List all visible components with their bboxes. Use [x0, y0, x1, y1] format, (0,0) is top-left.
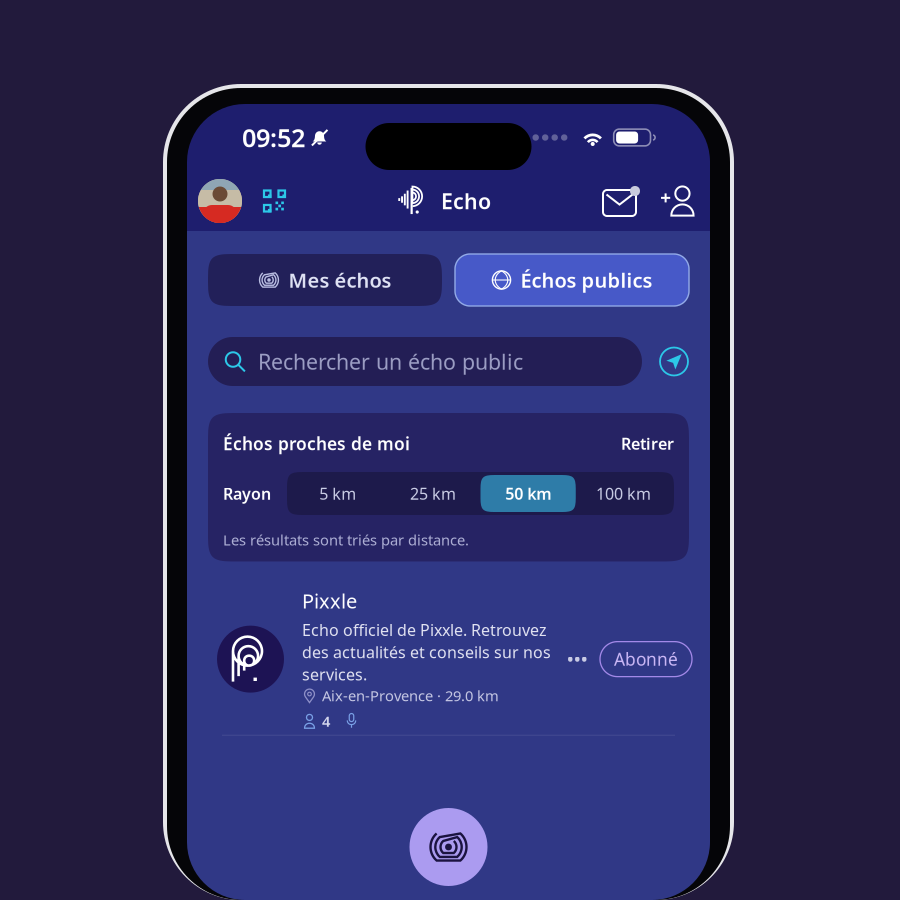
- staticText: Les résultats sont triés par distance.: [223, 530, 469, 549]
- staticText: Rechercher un écho public: [258, 347, 523, 376]
- button[interactable]: More options: [563, 644, 592, 675]
- button[interactable]: Pixxle: [187, 587, 710, 736]
- staticText: Aix-en-Provence · 29.0 km: [322, 686, 499, 705]
- staticText: 50 km: [505, 483, 551, 504]
- staticText: 100 km: [596, 483, 651, 504]
- staticText: Abonné: [614, 648, 678, 671]
- button[interactable]: Échos publics: [455, 254, 689, 306]
- button[interactable]: 5 km: [290, 475, 385, 512]
- staticText: Pixxle: [302, 587, 357, 614]
- staticText: 5 km: [319, 483, 356, 504]
- staticText: •••: [567, 648, 588, 671]
- button[interactable]: Use my location: [659, 346, 689, 376]
- button[interactable]: Abonné: [600, 642, 692, 677]
- staticText: Échos proches de moi: [223, 432, 410, 455]
- button[interactable]: Messages: [603, 186, 640, 216]
- button[interactable]: Add contact: [660, 185, 694, 216]
- staticText: Echo officiel de Pixxle. Retrouvez des a…: [302, 619, 551, 685]
- staticText: Mes échos: [288, 267, 391, 293]
- button[interactable]: 25 km: [385, 475, 480, 512]
- staticText: Echo: [441, 187, 491, 215]
- button[interactable]: Retirer: [621, 433, 674, 454]
- button[interactable]: Profile: [198, 179, 242, 223]
- button[interactable]: Scan QR code: [263, 189, 286, 212]
- button[interactable]: 50 km: [480, 475, 576, 512]
- button[interactable]: New echo: [409, 808, 487, 886]
- button[interactable]: 100 km: [576, 475, 671, 512]
- staticText: Échos publics: [520, 267, 652, 293]
- staticText: Rayon: [223, 483, 271, 504]
- staticText: 4: [322, 711, 330, 731]
- staticText: Retirer: [621, 433, 674, 454]
- staticText: 25 km: [410, 483, 456, 504]
- button[interactable]: Rechercher un écho public: [208, 337, 642, 386]
- staticText: 09:52: [242, 121, 305, 154]
- button[interactable]: Mes échos: [208, 254, 442, 306]
